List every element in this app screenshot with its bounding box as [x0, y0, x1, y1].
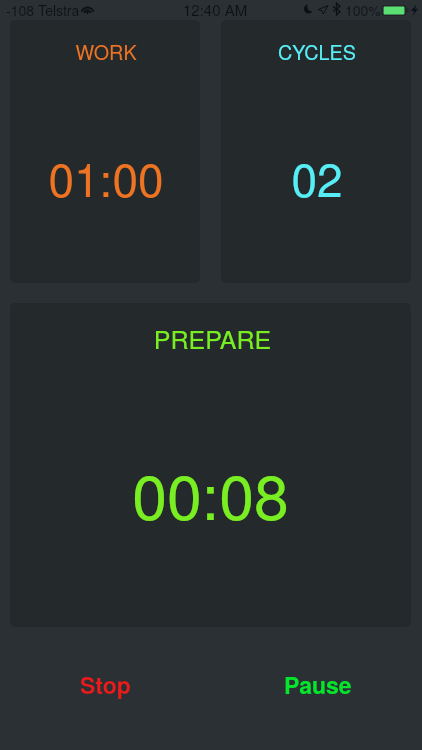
- staticText: 100%: [345, 0, 381, 20]
- staticText: 02: [222, 144, 411, 210]
- staticText: 00:08: [10, 448, 411, 538]
- staticText: -108 Telstra: [6, 0, 80, 20]
- button[interactable]: PREPARE: [10, 303, 411, 627]
- staticText: CYCLES: [222, 37, 411, 65]
- staticText: PREPARE: [12, 320, 411, 356]
- button[interactable]: Pause: [221, 627, 411, 750]
- staticText: Pause: [284, 668, 352, 701]
- staticText: 12:40 AM: [183, 0, 248, 19]
- staticText: Stop: [80, 668, 131, 701]
- staticText: 01:00: [11, 144, 200, 210]
- button[interactable]: Stop: [10, 627, 200, 750]
- button[interactable]: WORK: [10, 20, 200, 283]
- button[interactable]: CYCLES: [221, 20, 411, 283]
- staticText: WORK: [11, 37, 200, 65]
